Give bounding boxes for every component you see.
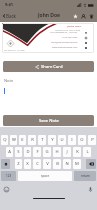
- staticText: Back: [6, 13, 17, 19]
- staticText: D: [26, 149, 30, 155]
- staticText: hello@reallygreatsite.com: [51, 41, 78, 44]
- button[interactable]: 123: [1, 171, 16, 181]
- staticText: Note: [4, 78, 14, 83]
- staticText: K: [76, 149, 79, 155]
- staticText: M: [75, 161, 79, 167]
- staticText: J: [66, 149, 68, 155]
- staticText: 123 Anywhere St., Any City: [50, 31, 78, 34]
- staticText: I: [71, 137, 73, 143]
- button[interactable]: T: [38, 135, 46, 145]
- staticText: S: [17, 149, 20, 155]
- staticText: F: [36, 149, 39, 155]
- staticText: JOHN DOE: [67, 25, 81, 28]
- staticText: Save Note: [39, 118, 59, 124]
- staticText: return: [81, 174, 90, 178]
- button[interactable]: X: [24, 159, 31, 169]
- button[interactable]: Delete: [87, 12, 95, 20]
- staticText: U: [60, 137, 64, 143]
- button[interactable]: Save Note: [3, 115, 94, 126]
- staticText: E: [21, 137, 24, 143]
- staticText: 123: [6, 174, 12, 178]
- staticText: Share Card: [41, 64, 63, 70]
- staticText: +123-456-7890: [62, 36, 78, 39]
- button[interactable]: D: [24, 147, 31, 157]
- button[interactable]: S: [15, 147, 22, 157]
- staticText: X: [26, 161, 29, 167]
- staticText: T: [41, 137, 44, 143]
- staticText: www.reallygreatsite.com: [52, 46, 78, 49]
- staticText: H: [55, 149, 59, 155]
- staticText: G: [45, 149, 49, 155]
- button[interactable]: W: [10, 135, 17, 145]
- staticText: N: [65, 161, 69, 167]
- staticText: B: [56, 161, 59, 167]
- staticText: John Doe: [38, 12, 60, 19]
- staticText: A: [8, 149, 11, 155]
- staticText: Z: [17, 161, 20, 167]
- button[interactable]: N: [63, 159, 71, 169]
- staticText: MARKETING MANAGER: [55, 29, 81, 32]
- button[interactable]: F: [33, 147, 41, 157]
- button[interactable]: H: [53, 147, 61, 157]
- button[interactable]: Emoji: [3, 186, 10, 193]
- button[interactable]: Back: [0, 11, 20, 21]
- button[interactable]: Q: [1, 135, 8, 145]
- button[interactable]: U: [58, 135, 66, 145]
- staticText: Q: [3, 137, 7, 143]
- staticText: P: [91, 137, 94, 143]
- button[interactable]: C: [33, 159, 41, 169]
- button[interactable]: Favorite: [71, 12, 79, 20]
- button[interactable]: Contact: [79, 12, 87, 20]
- button[interactable]: P: [88, 135, 96, 145]
- button[interactable]: Backspace: [86, 159, 96, 169]
- button[interactable]: Share Card: [3, 61, 94, 72]
- staticText: V: [46, 161, 49, 167]
- staticText: R: [31, 137, 34, 143]
- button[interactable]: return: [74, 171, 96, 181]
- button[interactable]: space: [18, 171, 72, 181]
- button[interactable]: Y: [48, 135, 56, 145]
- button[interactable]: B: [53, 159, 61, 169]
- staticText: O: [80, 137, 84, 143]
- button[interactable]: I: [68, 135, 76, 145]
- staticText: L: [86, 149, 89, 155]
- staticText: C: [36, 161, 39, 167]
- button[interactable]: E: [19, 135, 26, 145]
- button[interactable]: Dictate: [87, 186, 94, 193]
- button[interactable]: Shift: [1, 159, 10, 169]
- button[interactable]: Z: [15, 159, 22, 169]
- staticText: COMPANY NAME: [4, 48, 25, 51]
- button[interactable]: J: [63, 147, 71, 157]
- staticText: space: [41, 174, 50, 178]
- button[interactable]: G: [43, 147, 51, 157]
- button[interactable]: COMPANY NAME: [2, 23, 94, 53]
- button[interactable]: M: [73, 159, 81, 169]
- staticText: Y: [51, 137, 54, 143]
- button[interactable]: A: [6, 147, 13, 157]
- staticText: 9:41: [5, 2, 13, 7]
- button[interactable]: R: [28, 135, 36, 145]
- button[interactable]: L: [83, 147, 91, 157]
- button[interactable]: V: [43, 159, 51, 169]
- button[interactable]: K: [73, 147, 81, 157]
- staticText: W: [12, 137, 16, 143]
- button[interactable]: O: [78, 135, 86, 145]
